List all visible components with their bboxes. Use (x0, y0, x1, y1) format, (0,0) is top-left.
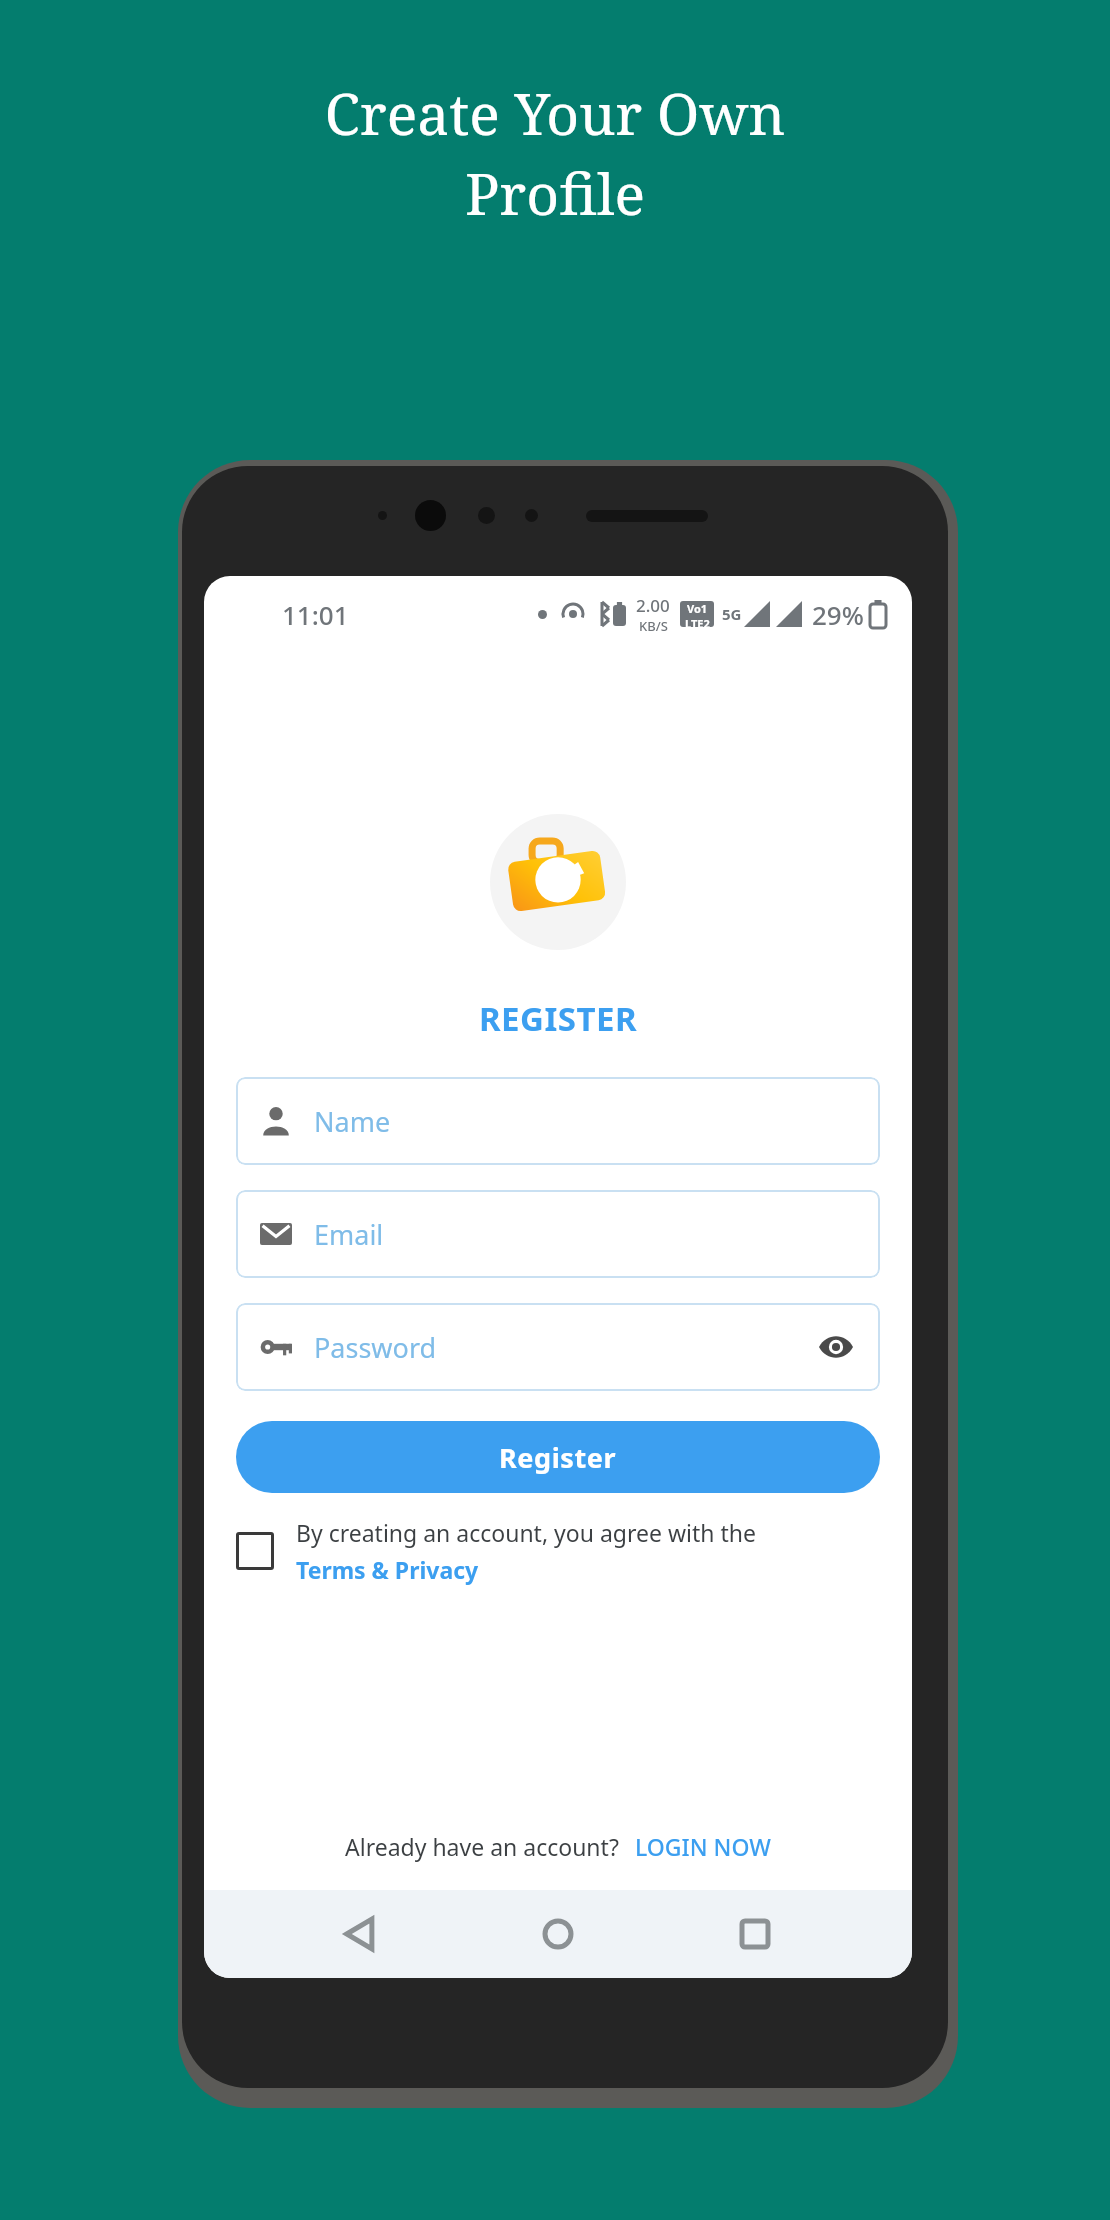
staticText: 11:01 (282, 597, 349, 632)
button[interactable]: Show password (816, 1327, 856, 1367)
button[interactable]: LOGIN NOW (635, 1831, 771, 1862)
staticText: Register (499, 1439, 617, 1476)
button[interactable]: Back (321, 1894, 401, 1974)
staticText: KB/S (639, 617, 668, 635)
button[interactable]: Terms & Privacy (296, 1554, 479, 1585)
staticText: By creating an account, you agree with t… (296, 1517, 756, 1548)
staticText: LTE2 (685, 616, 710, 627)
staticText: Email (314, 1216, 384, 1253)
button[interactable]: Register (236, 1421, 880, 1493)
staticText: 5G (722, 604, 742, 624)
staticText: 2.00 (636, 594, 670, 617)
button[interactable]: Password (236, 1303, 880, 1391)
staticText: REGISTER (204, 996, 912, 1041)
button[interactable]: Name (236, 1077, 880, 1165)
staticText: Name (314, 1103, 391, 1140)
button[interactable]: Home (518, 1894, 598, 1974)
button[interactable]: Recent apps (715, 1894, 795, 1974)
staticText: 29% (812, 597, 864, 632)
button[interactable]: Email (236, 1190, 880, 1278)
staticText: Already have an account? (345, 1831, 619, 1862)
staticText: Password (314, 1329, 437, 1366)
button[interactable]: By creating an account, you agree with t… (236, 1517, 880, 1585)
staticText: Create Your Own Profile (0, 74, 1110, 231)
staticText: Vo1 (687, 601, 708, 616)
